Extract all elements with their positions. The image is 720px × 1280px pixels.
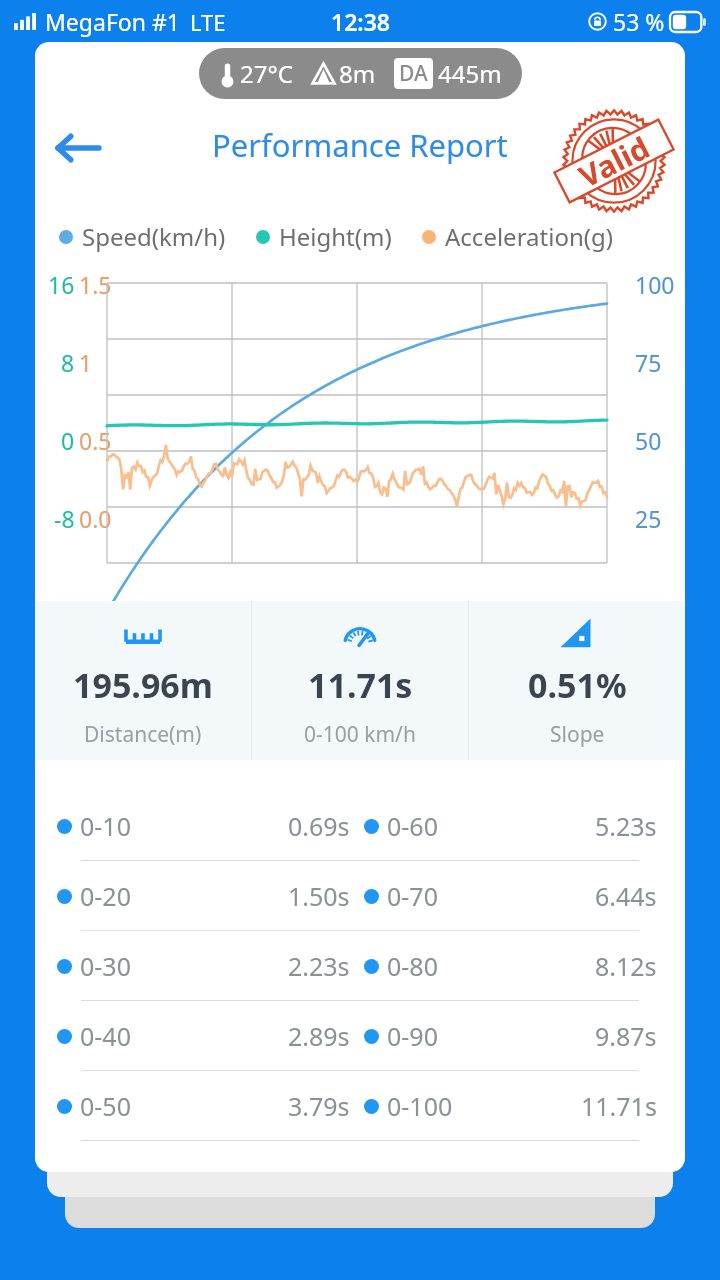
staticText: 1 [79,347,93,378]
staticText: 1.5 [79,269,112,300]
button[interactable]: 27°C [199,48,522,99]
staticText: 25 [635,503,662,534]
staticText: Valid [572,126,656,196]
staticText: 0.0 [79,503,112,534]
staticText: MegaFon #1 [45,6,180,37]
button[interactable]: Acceleration(g) [422,220,613,253]
staticText: 11.71s [308,662,413,708]
button[interactable]: 0-30 [35,931,685,1000]
staticText: 12:38 [331,6,390,37]
staticText: 445m [438,57,502,90]
staticText: 1.50s [288,879,350,913]
staticText: 0-80 [387,949,438,983]
button[interactable]: 0-10 [35,791,685,860]
staticText: 195.96m [73,662,213,708]
staticText: 2.89s [288,1019,350,1053]
staticText: 5.23s [595,809,657,843]
button[interactable]: Speed(km/h) [59,220,226,253]
staticText: 0-100 [387,1089,453,1123]
staticText: 0.51% [528,662,627,708]
staticText: 6.44s [595,879,657,913]
staticText: 2.23s [288,949,350,983]
staticText: 50 [635,425,662,456]
staticText: 8 [61,347,75,378]
staticText: 0-20 [80,879,131,913]
button[interactable]: 0-20 [35,861,685,930]
staticText: 0-50 [80,1089,131,1123]
staticText: 0-90 [387,1019,438,1053]
staticText: Speed(km/h) [82,220,226,253]
staticText: 8m [339,57,376,90]
button[interactable]: Back [43,114,111,182]
staticText: -8 [54,503,75,534]
staticText: LTE [190,7,226,37]
button[interactable]: 0.51% [469,601,685,760]
staticText: 8.12s [595,949,657,983]
staticText: 0 [61,425,75,456]
button[interactable]: 0-40 [35,1001,685,1070]
button[interactable]: 11.71s [252,601,468,760]
staticText: 11.71s [581,1089,657,1123]
staticText: 9.87s [595,1019,657,1053]
staticText: 0-70 [387,879,438,913]
staticText: 3.79s [288,1089,350,1123]
staticText: 0-30 [80,949,131,983]
button[interactable]: Height(m) [256,220,392,253]
staticText: Acceleration(g) [445,220,613,253]
staticText: 0-40 [80,1019,131,1053]
staticText: 0-10 [80,809,131,843]
staticText: 75 [635,347,662,378]
staticText: 16 [48,269,75,300]
staticText: 0.5 [79,425,112,456]
staticText: 53 % [613,6,665,37]
button[interactable]: 195.96m [35,601,251,760]
staticText: 0.69s [288,809,350,843]
staticText: Performance Report [212,124,508,166]
staticText: 0-60 [387,809,438,843]
staticText: Slope [550,720,605,749]
button[interactable]: 0-50 [35,1071,685,1140]
staticText: 100 [635,269,675,300]
staticText: 0-100 km/h [304,720,416,749]
staticText: Distance(m) [84,720,202,749]
staticText: 27°C [240,57,293,90]
staticText: Height(m) [279,220,392,253]
staticText: DA [399,59,428,88]
